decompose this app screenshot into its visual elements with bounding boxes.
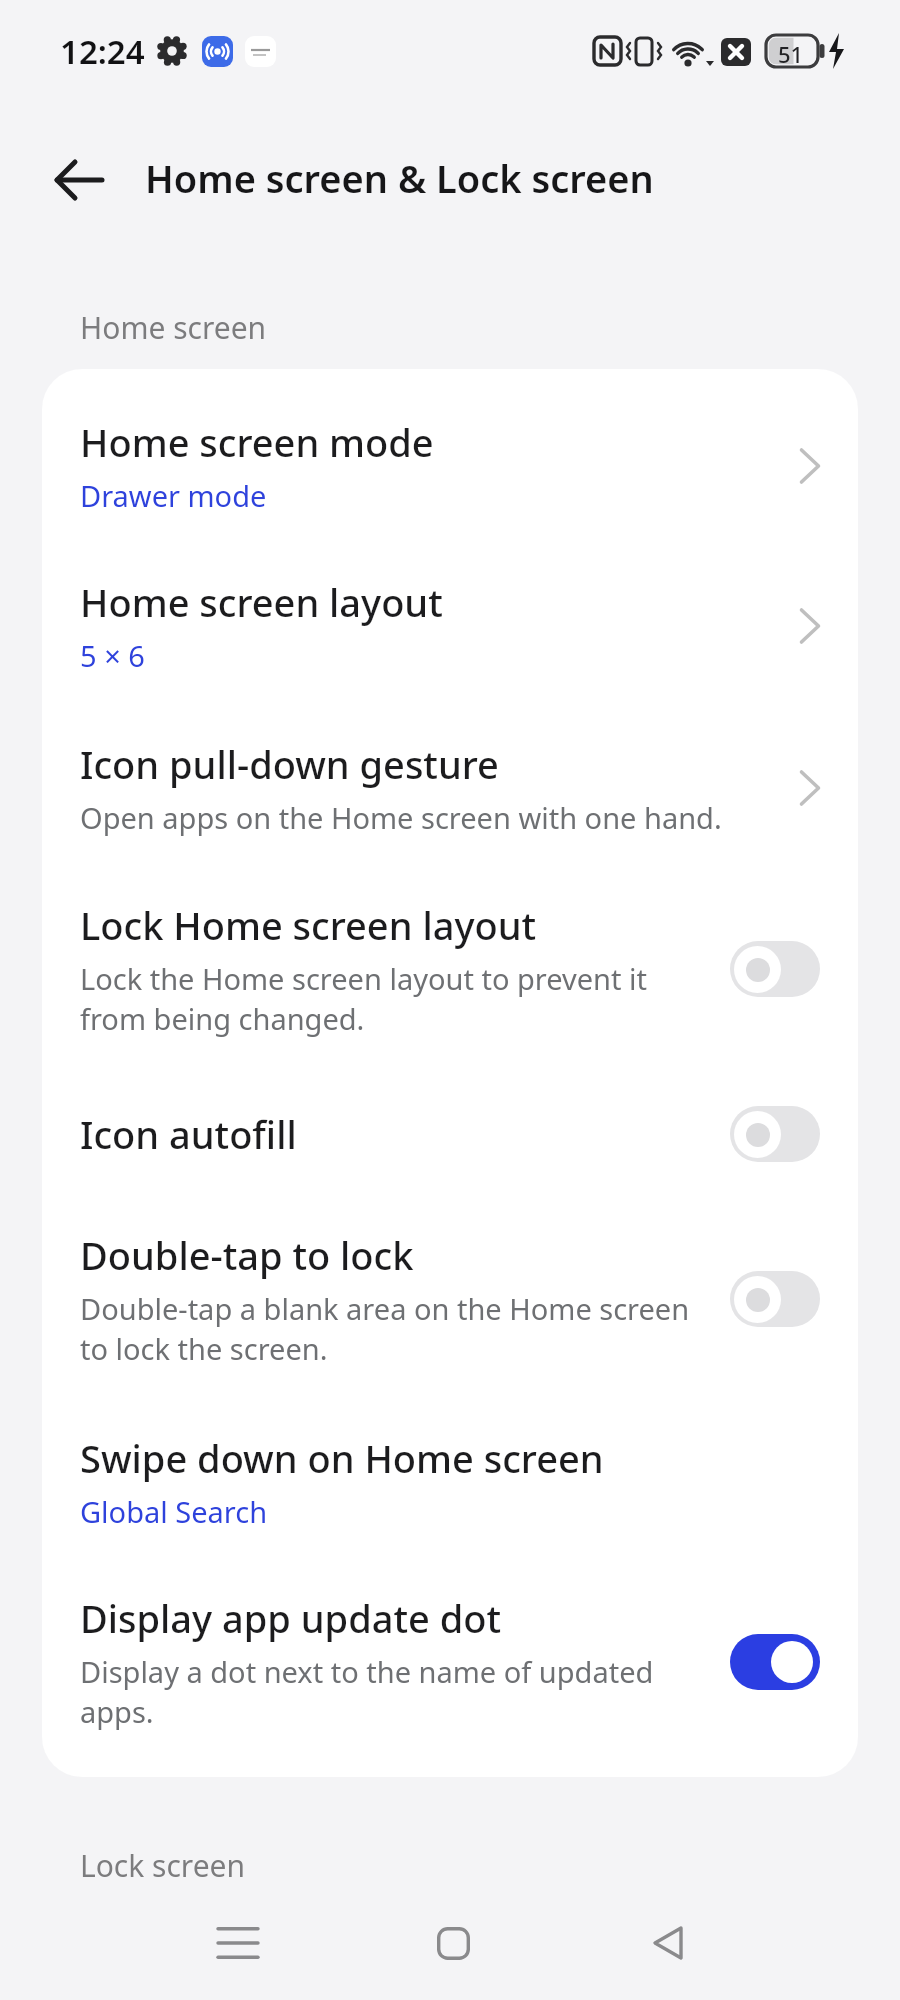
- button[interactable]: Swipe down on Home screen: [80, 1432, 820, 1531]
- staticText: Open apps on the Home screen with one ha…: [80, 798, 722, 837]
- button[interactable]: [638, 1913, 698, 1973]
- button[interactable]: [40, 140, 120, 220]
- staticText: Home screen layout: [80, 576, 443, 628]
- staticText: Swipe down on Home screen: [80, 1432, 604, 1484]
- staticText: 51: [778, 39, 804, 69]
- button[interactable]: [423, 1913, 483, 1973]
- staticText: Home screen: [80, 307, 267, 348]
- button[interactable]: Lock Home screen layout: [80, 899, 820, 1039]
- staticText: Icon pull-down gesture: [80, 738, 499, 790]
- button[interactable]: [730, 1634, 820, 1690]
- button[interactable]: [730, 1106, 820, 1162]
- staticText: Icon autofill: [80, 1108, 297, 1160]
- staticText: Display app update dot: [80, 1592, 502, 1644]
- staticText: Lock screen: [80, 1845, 246, 1886]
- staticText: Double-tap a blank area on the Home scre…: [80, 1289, 690, 1369]
- staticText: Lock Home screen layout: [80, 899, 537, 951]
- button[interactable]: Icon autofill: [80, 1106, 820, 1162]
- staticText: 12:24: [60, 29, 145, 74]
- staticText: Lock the Home screen layout to prevent i…: [80, 959, 647, 1039]
- button[interactable]: [208, 1913, 268, 1973]
- button[interactable]: [730, 1271, 820, 1327]
- staticText: 5 × 6: [80, 636, 145, 675]
- staticText: Drawer mode: [80, 476, 267, 515]
- staticText: Home screen & Lock screen: [145, 152, 654, 204]
- button[interactable]: Display app update dot: [80, 1592, 820, 1732]
- button[interactable]: Double-tap to lock: [80, 1229, 820, 1369]
- button[interactable]: Home screen mode: [80, 416, 820, 515]
- button[interactable]: Icon pull-down gesture: [80, 738, 820, 837]
- staticText: Display a dot next to the name of update…: [80, 1652, 654, 1732]
- staticText: Double-tap to lock: [80, 1229, 414, 1281]
- staticText: Global Search: [80, 1492, 268, 1531]
- button[interactable]: [730, 941, 820, 997]
- button[interactable]: Home screen layout: [80, 576, 820, 675]
- staticText: Home screen mode: [80, 416, 434, 468]
